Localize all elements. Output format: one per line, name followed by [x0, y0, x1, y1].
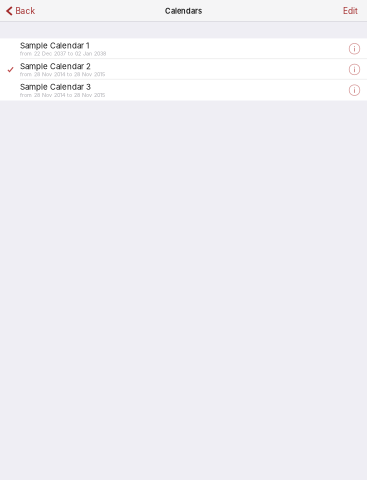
button[interactable]: More info about Sample Calendar 3 [342, 80, 367, 100]
button[interactable]: Back [0, 0, 42, 22]
button[interactable]: Sample Calendar 2 [0, 59, 367, 80]
button[interactable]: Edit [335, 0, 367, 22]
staticText: Back [15, 6, 35, 16]
button[interactable]: Sample Calendar 3 [0, 80, 367, 100]
button[interactable]: Sample Calendar 1 [0, 38, 367, 59]
staticText: Sample Calendar 1 [20, 41, 89, 50]
staticText: from 28 Nov 2014 to 28 Nov 2015 [20, 71, 105, 78]
staticText: from 22 Dec 2037 to 02 Jan 2038 [20, 50, 106, 57]
button[interactable]: More info about Sample Calendar 2 [342, 59, 367, 80]
button[interactable]: More info about Sample Calendar 1 [342, 38, 367, 59]
staticText: Sample Calendar 2 [20, 61, 91, 71]
staticText: Sample Calendar 3 [20, 82, 91, 92]
staticText: Edit [343, 6, 358, 16]
staticText: Calendars [165, 6, 202, 15]
staticText: from 28 Nov 2014 to 28 Nov 2015 [20, 92, 105, 98]
